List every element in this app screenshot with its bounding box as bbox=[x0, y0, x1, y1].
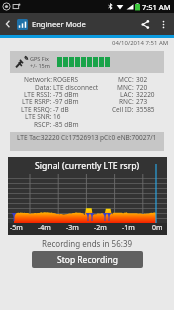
staticText: GPS Fix bbox=[30, 55, 49, 62]
staticText: Network: bbox=[24, 75, 52, 84]
staticText: 04/10/2014 7:51 AM bbox=[112, 39, 169, 47]
staticText: 35585 bbox=[136, 105, 155, 114]
staticText: LTE RSSI: bbox=[24, 90, 52, 99]
staticText: Engineer Mode bbox=[32, 19, 86, 29]
staticText: LTE Tac:32220 Ci:17526913 pCi:0 eNB:7002… bbox=[17, 133, 157, 142]
staticText: 7:51 AM bbox=[142, 2, 171, 12]
staticText: -75 dBm bbox=[53, 90, 79, 99]
staticText: LTE RSRP: bbox=[22, 97, 52, 106]
staticText: -97 dBm bbox=[53, 97, 79, 106]
staticText: LTE RSRQ: bbox=[21, 105, 52, 114]
staticText: -5m bbox=[10, 223, 23, 233]
staticText: MNC: bbox=[117, 83, 134, 92]
staticText: LAC: bbox=[120, 90, 134, 99]
staticText: Cell ID: bbox=[112, 105, 134, 114]
button[interactable]: Stop Recording bbox=[32, 251, 143, 268]
staticText: Data: bbox=[35, 83, 52, 92]
staticText: -3m bbox=[66, 223, 79, 233]
staticText: 302 bbox=[136, 75, 148, 84]
staticText: LTE SNR: bbox=[25, 112, 52, 121]
staticText: ROGERS bbox=[53, 75, 79, 84]
button[interactable]: Back bbox=[0, 13, 15, 35]
staticText: 32220 bbox=[136, 90, 155, 99]
staticText: RSCP: bbox=[34, 120, 52, 129]
staticText: 273 bbox=[136, 97, 148, 106]
staticText: +/- 15m bbox=[30, 62, 50, 69]
staticText: -7 dB bbox=[53, 105, 69, 114]
button[interactable]: More options bbox=[156, 13, 171, 35]
button[interactable]: Share bbox=[135, 13, 156, 35]
staticText: Recording ends in 56:39 bbox=[42, 238, 133, 249]
staticText: LTE disconnect bbox=[53, 83, 99, 92]
staticText: Signal (currently LTE rsrp) bbox=[35, 160, 140, 172]
staticText: RNC: bbox=[119, 97, 134, 106]
staticText: -1m bbox=[122, 223, 135, 233]
staticText: -2m bbox=[94, 223, 107, 233]
staticText: -85 dBm bbox=[53, 120, 79, 129]
staticText: -4m bbox=[38, 223, 51, 233]
staticText: 16 bbox=[53, 112, 61, 121]
staticText: Stop Recording bbox=[57, 254, 118, 266]
staticText: 720 bbox=[136, 83, 148, 92]
staticText: 0m bbox=[152, 223, 163, 233]
staticText: MCC: bbox=[118, 75, 134, 84]
